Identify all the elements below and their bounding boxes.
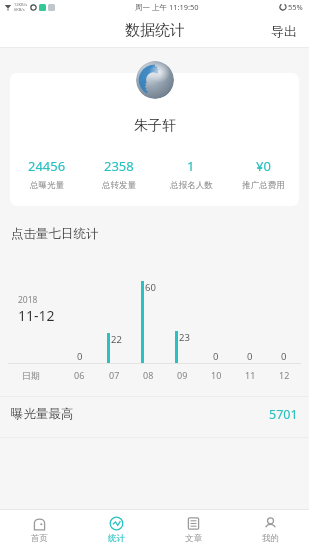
button[interactable]: 首页	[0, 510, 78, 550]
staticText: 首页	[31, 533, 48, 544]
staticText: 文章	[185, 533, 202, 544]
staticText: 朱子轩	[134, 117, 176, 135]
staticText: 推广总费用	[242, 180, 285, 191]
button[interactable]: 导出	[259, 17, 309, 45]
staticText: 点击量七日统计	[11, 226, 99, 242]
staticText: 11-12	[18, 306, 55, 325]
button[interactable]: 朱子轩	[10, 73, 299, 206]
staticText: 5701	[269, 406, 298, 423]
staticText: 总曝光量	[30, 180, 64, 191]
staticText: 12KB/s	[14, 2, 28, 7]
staticText: 数据统计	[125, 21, 185, 40]
staticText: 23	[179, 331, 190, 344]
staticText: 12	[279, 369, 290, 381]
staticText: 总报名人数	[170, 180, 213, 191]
staticText: 统计	[108, 533, 125, 544]
staticText: 2018	[18, 294, 38, 306]
staticText: 0	[247, 350, 253, 363]
button[interactable]: 我的	[232, 510, 309, 550]
staticText: 日期	[22, 370, 40, 381]
staticText: 22	[111, 333, 122, 346]
staticText: 6KB/s	[14, 7, 25, 12]
staticText: 1	[187, 157, 195, 175]
button[interactable]: 曝光量最高	[0, 397, 309, 431]
staticText: 24456	[28, 157, 66, 175]
staticText: 周一 上午 11:19:50	[135, 2, 199, 12]
staticText: 0	[213, 350, 219, 363]
staticText: ¥0	[256, 157, 271, 175]
staticText: 2358	[104, 157, 134, 175]
staticText: 07	[109, 369, 120, 381]
staticText: 我的	[262, 533, 279, 544]
staticText: 11	[245, 369, 256, 381]
staticText: 06	[74, 369, 85, 381]
staticText: 0	[281, 350, 287, 363]
staticText: 60	[145, 281, 156, 294]
staticText: 0	[77, 350, 83, 363]
staticText: 08	[143, 369, 154, 381]
button[interactable]: 统计	[78, 510, 155, 550]
staticText: 总转发量	[102, 180, 136, 191]
button[interactable]: 文章	[155, 510, 232, 550]
staticText: 曝光量最高	[11, 406, 74, 422]
staticText: 导出	[271, 23, 297, 39]
staticText: 09	[177, 369, 188, 381]
staticText: 55%	[288, 2, 303, 12]
staticText: 10	[211, 369, 222, 381]
